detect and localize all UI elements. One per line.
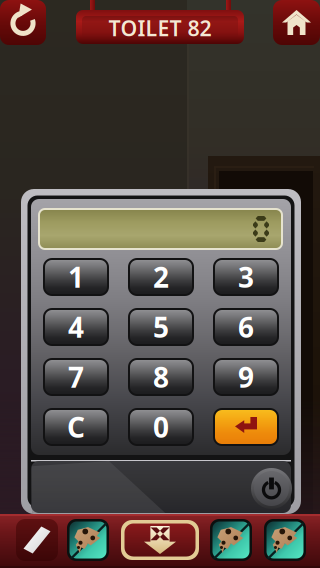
button[interactable]: 4 xyxy=(44,309,108,345)
staticText: 8 xyxy=(153,358,169,396)
staticText: 2 xyxy=(153,258,169,296)
staticText: C xyxy=(67,408,85,446)
button[interactable]: Map fragment 2 xyxy=(210,519,252,561)
staticText: 5 xyxy=(153,308,169,346)
button[interactable]: 0 xyxy=(129,409,193,445)
button[interactable]: Power xyxy=(251,468,292,509)
staticText: 7 xyxy=(68,358,84,396)
button[interactable]: Home xyxy=(273,0,320,45)
staticText: 9 xyxy=(238,358,254,396)
button[interactable]: Restart level xyxy=(0,0,46,45)
staticText: 6 xyxy=(238,308,254,346)
button[interactable]: 5 xyxy=(129,309,193,345)
button[interactable]: 8 xyxy=(129,359,193,395)
button[interactable]: Paper note xyxy=(16,519,58,561)
button[interactable]: Map fragment 1 xyxy=(67,519,109,561)
button[interactable]: 3 xyxy=(214,259,278,295)
button[interactable]: Map fragment 3 xyxy=(264,519,306,561)
button[interactable]: 6 xyxy=(214,309,278,345)
button[interactable]: 7 xyxy=(44,359,108,395)
staticText: 3 xyxy=(238,258,254,296)
button[interactable]: C xyxy=(44,409,108,445)
button[interactable]: Enter xyxy=(214,409,278,445)
staticText: 4 xyxy=(68,308,84,346)
button[interactable]: 9 xyxy=(214,359,278,395)
button[interactable]: 2 xyxy=(129,259,193,295)
staticText: TOILET 82 xyxy=(108,14,211,42)
button[interactable]: 1 xyxy=(44,259,108,295)
button[interactable]: Drop item xyxy=(121,520,199,560)
staticText: 0 xyxy=(153,408,169,446)
staticText: 1 xyxy=(68,258,84,296)
